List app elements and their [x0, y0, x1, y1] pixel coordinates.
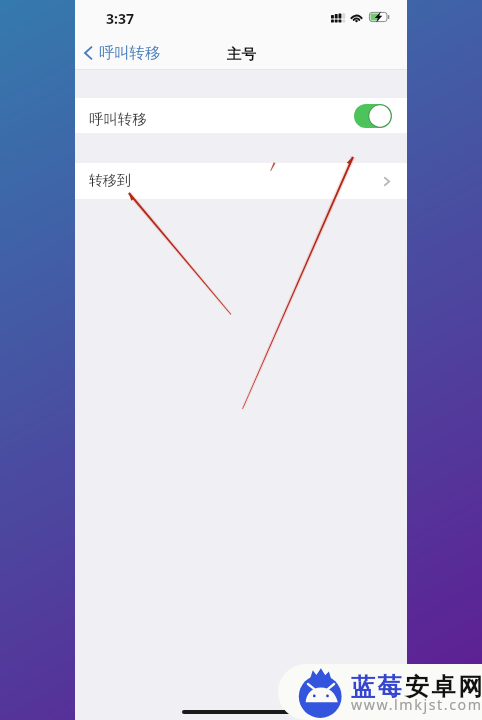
staticText: 蓝莓	[351, 672, 405, 702]
button[interactable]: 呼叫转移	[75, 98, 407, 133]
button[interactable]: 呼叫转移	[78, 38, 167, 67]
button[interactable]: Call forwarding toggle	[354, 104, 392, 128]
staticText: 3:37	[106, 9, 134, 28]
staticText: 呼叫转移	[89, 110, 147, 128]
staticText: 呼叫转移	[99, 43, 161, 62]
staticText: 转移到	[89, 172, 131, 190]
staticText: 主号	[227, 45, 256, 63]
staticText: www.lmkjst.com	[351, 695, 482, 714]
staticText: 安卓网	[405, 672, 482, 702]
button[interactable]: 转移到	[75, 163, 407, 199]
